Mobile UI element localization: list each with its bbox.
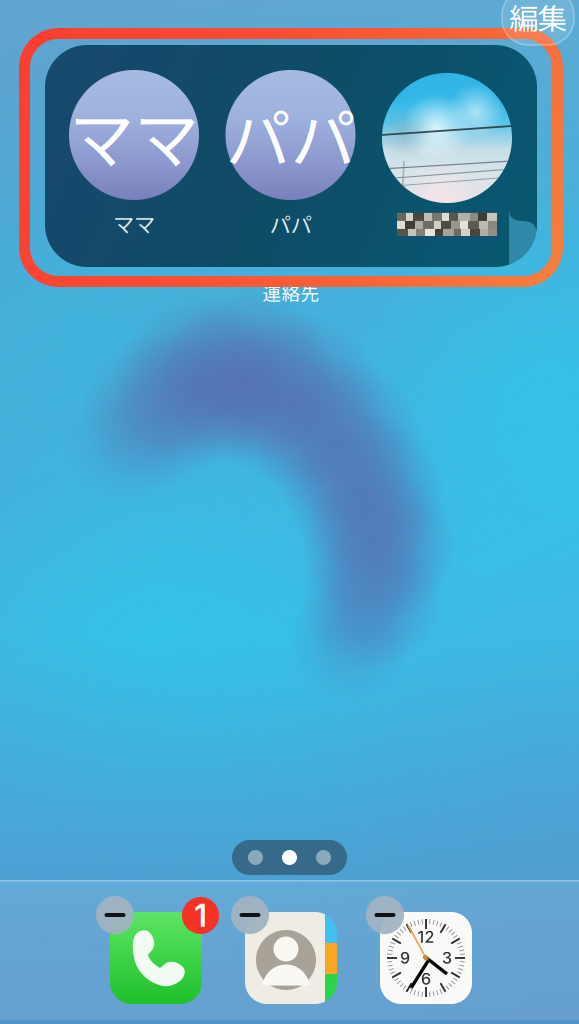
- staticText: 3: [442, 948, 452, 968]
- staticText: ママ: [69, 88, 199, 182]
- staticText: パパ: [269, 208, 311, 239]
- staticText: 連絡先: [262, 279, 319, 306]
- staticText: 1: [194, 897, 206, 934]
- button[interactable]: 電話: [96, 896, 219, 1004]
- button[interactable]: 連絡先 ウィジェット: [45, 45, 537, 267]
- staticText: 6: [421, 969, 431, 989]
- staticText: 編集: [509, 0, 567, 38]
- staticText: ママ: [113, 208, 155, 239]
- staticText: パパ: [225, 88, 355, 182]
- button[interactable]: 編集: [502, 0, 574, 45]
- button[interactable]: 連絡先: [231, 896, 354, 1004]
- button[interactable]: 時計: [366, 896, 489, 1004]
- staticText: 12: [417, 927, 434, 947]
- staticText: 9: [400, 948, 410, 968]
